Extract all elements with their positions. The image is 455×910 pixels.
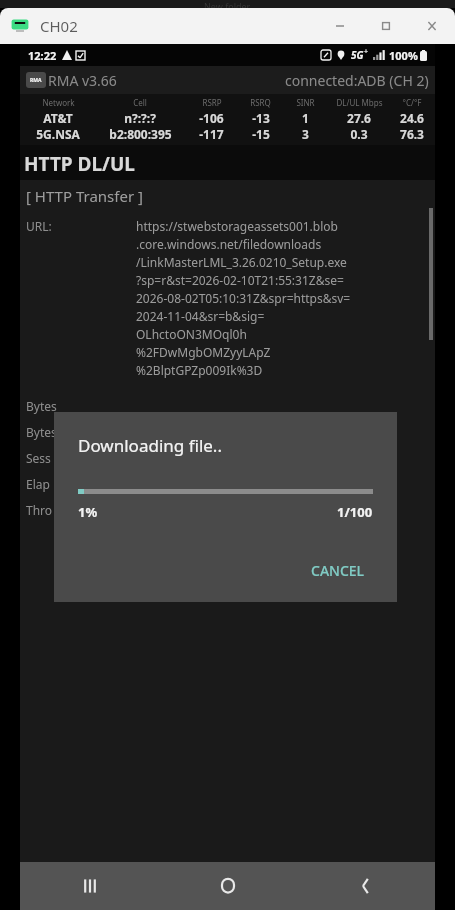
staticText: RMA — [30, 77, 42, 84]
staticText: /LinkMasterLML_3.26.0210_Setup.exe — [136, 254, 347, 270]
staticText: 0.3 — [350, 126, 368, 142]
staticText: RSRQ — [250, 97, 271, 108]
staticText: New folder — [204, 0, 251, 8]
staticText: -15 — [252, 126, 270, 142]
button[interactable]: Recents — [20, 862, 159, 910]
staticText: Elap — [26, 476, 50, 492]
button[interactable]: Home — [159, 862, 297, 910]
staticText: Bytes — [26, 398, 57, 414]
button[interactable]: Minimize — [317, 8, 363, 44]
button[interactable]: Maximize — [363, 8, 409, 44]
staticText: Thro — [26, 502, 53, 518]
staticText: 3 — [302, 126, 309, 142]
staticText: 76.3 — [400, 126, 424, 142]
staticText: 2024-11-04&sr=b&sig= — [136, 308, 265, 324]
staticText: 1/100 — [337, 503, 373, 521]
staticText: 5G — [351, 48, 364, 62]
staticText: -106 — [199, 110, 224, 126]
staticText: Downloading file.. — [78, 434, 222, 457]
staticText: %2FDwMgbOMZyyLApZ — [136, 344, 271, 360]
staticText: -117 — [199, 126, 224, 142]
staticText: Sess — [26, 450, 51, 466]
staticText: SINR — [296, 97, 315, 108]
staticText: CH02 — [40, 16, 78, 36]
staticText: 100% — [389, 48, 418, 63]
button[interactable]: CANCEL — [303, 555, 373, 586]
staticText: 12:22 — [28, 48, 57, 63]
staticText: Bytes — [26, 424, 57, 440]
staticText: HTTP DL/UL — [24, 151, 135, 177]
staticText: RMA v3.66 — [48, 71, 117, 90]
button[interactable]: Back — [297, 862, 435, 910]
staticText: 27.6 — [347, 110, 371, 126]
staticText: Network — [42, 97, 75, 108]
staticText: 1 — [302, 110, 309, 126]
staticText: -13 — [252, 110, 270, 126]
staticText: https://stwebstorageassets001.blob — [136, 218, 338, 234]
staticText: b2:800:395 — [109, 126, 172, 142]
staticText: DL/UL Mbps — [336, 97, 383, 108]
staticText: 24.6 — [400, 110, 424, 126]
staticText: URL: — [26, 218, 136, 234]
staticText: 1% — [78, 503, 98, 521]
staticText: 2026-08-02T05:10:31Z&spr=https&sv= — [136, 290, 351, 306]
staticText: RSRP — [202, 97, 222, 108]
staticText: Cell — [133, 97, 147, 108]
staticText: + — [364, 47, 369, 57]
staticText: ?sp=r&st=2026-02-10T21:55:31Z&se= — [136, 272, 344, 288]
staticText: CANCEL — [311, 561, 365, 580]
staticText: connected:ADB (CH 2) — [285, 71, 429, 90]
staticText: .core.windows.net/filedownloads — [136, 236, 322, 252]
staticText: [ HTTP Transfer ] — [26, 186, 143, 206]
staticText: n?:?:? — [124, 110, 156, 126]
staticText: %2BlptGPZp009Ik%3D — [136, 362, 263, 378]
staticText: OLhctoON3MOql0h — [136, 326, 247, 342]
button[interactable]: Close — [409, 8, 455, 44]
staticText: 5G.NSA — [36, 126, 80, 142]
staticText: AT&T — [43, 110, 73, 126]
staticText: °C/°F — [402, 97, 422, 108]
